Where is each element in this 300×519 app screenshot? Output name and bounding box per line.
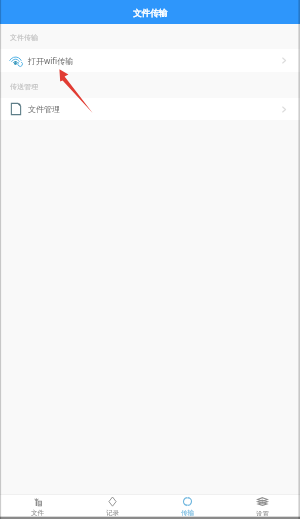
button[interactable]: Records [75, 494, 150, 519]
button[interactable]: Files [0, 494, 75, 519]
staticText: 记录 [106, 509, 120, 517]
staticText: 文件管理 [28, 104, 60, 114]
staticText: 打开wifi传输 [28, 55, 74, 66]
staticText: 传输 [181, 509, 195, 517]
staticText: 设置 [256, 510, 270, 518]
button[interactable]: Transfer [150, 494, 225, 519]
button[interactable]: Settings [225, 494, 300, 519]
staticText: 文件 [31, 509, 45, 517]
staticText: 文件传输 [10, 33, 38, 42]
button[interactable]: 打开wifi传输 [0, 49, 300, 72]
button[interactable]: 文件管理 [0, 98, 300, 120]
staticText: 传送管理 [10, 82, 38, 91]
staticText: 文件传输 [133, 8, 168, 19]
